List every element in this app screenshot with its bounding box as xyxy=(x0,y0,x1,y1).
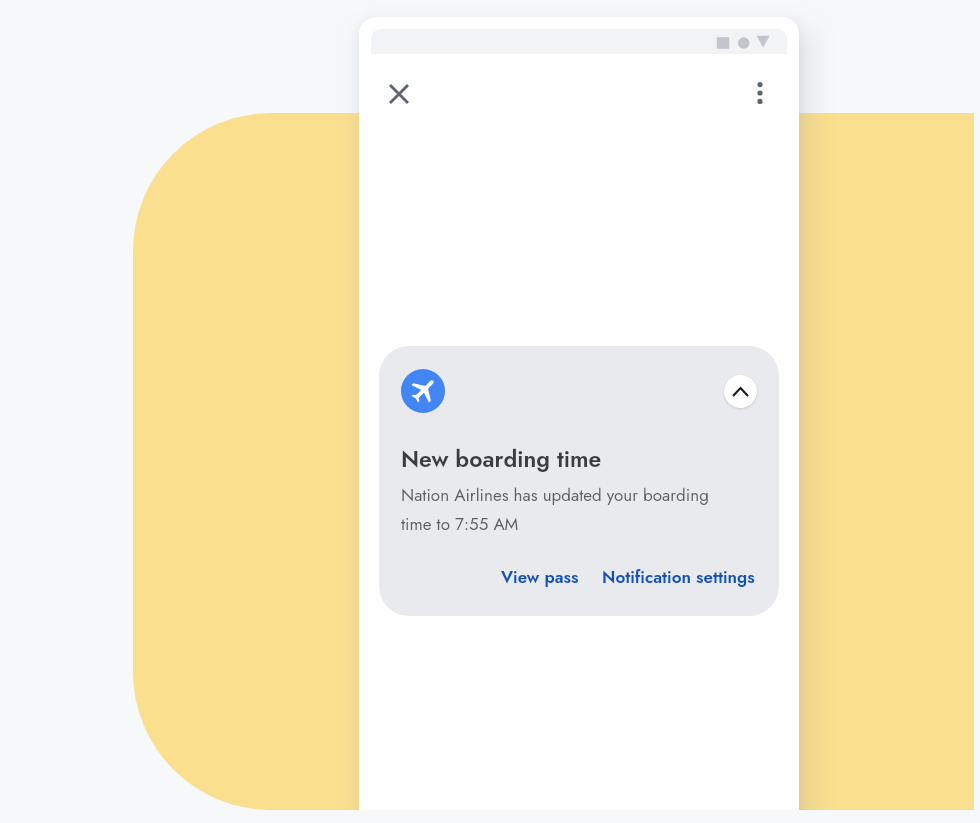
button[interactable]: Notification settings xyxy=(602,565,755,590)
staticText: View pass xyxy=(501,565,579,590)
button[interactable]: Collapse notification xyxy=(724,375,757,408)
staticText: Notification settings xyxy=(602,565,755,590)
button[interactable]: More options xyxy=(736,69,784,117)
staticText: New boarding time xyxy=(401,442,602,475)
button[interactable]: View pass xyxy=(501,565,579,590)
button[interactable]: Close xyxy=(375,70,423,118)
button[interactable]: Collapse notification xyxy=(379,346,779,616)
staticText: Nation Airlines has updated your boardin… xyxy=(401,483,741,536)
